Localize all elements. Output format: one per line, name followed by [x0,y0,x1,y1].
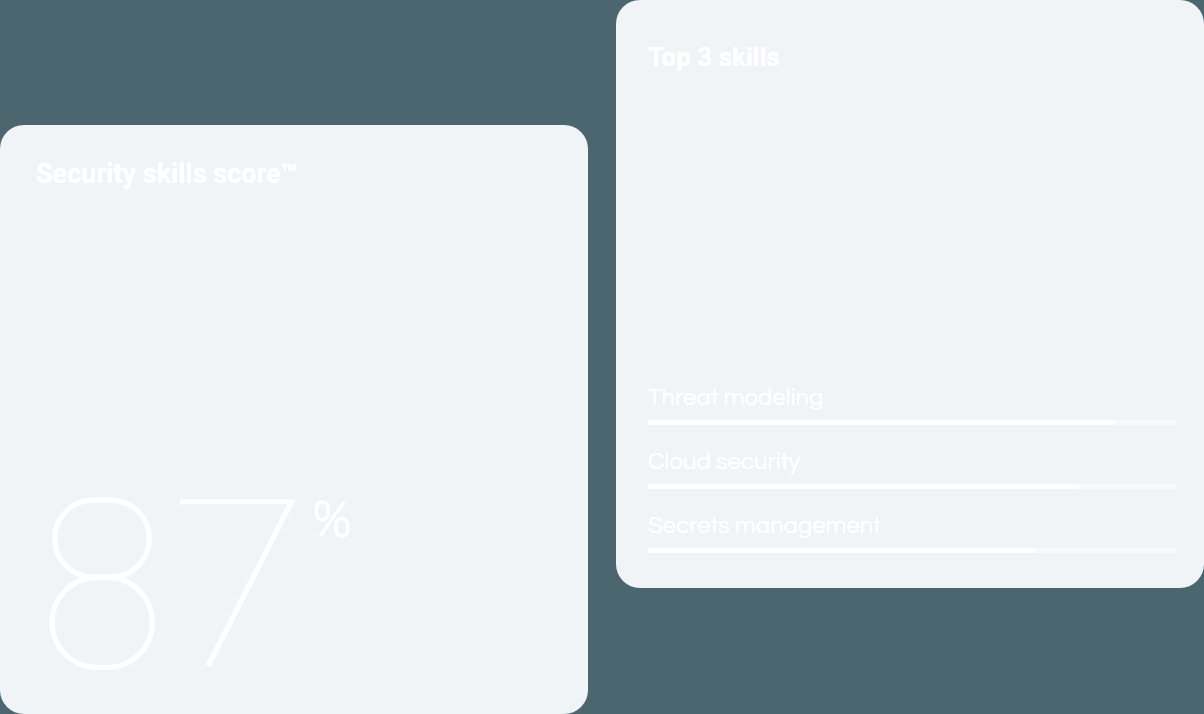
staticText: Cloud security [648,449,801,474]
staticText: Threat modeling [648,385,824,410]
staticText: Secrets management [648,513,881,538]
button[interactable]: Threat modeling [648,373,1176,425]
button[interactable]: Top 3 skills [616,0,1204,588]
staticText: Security skills score™ [36,158,298,190]
staticText: Top 3 skills [648,42,780,72]
button[interactable]: Secrets management [648,501,1176,553]
button[interactable]: Cloud security [648,437,1176,489]
button[interactable]: Security skills score™ [0,125,588,714]
other: Score 87 percent [36,485,356,685]
